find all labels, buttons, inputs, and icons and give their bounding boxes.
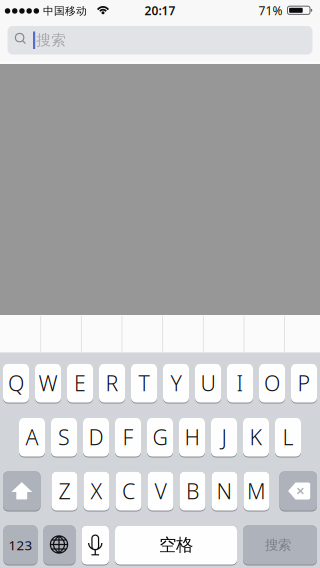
button[interactable]: 搜索 — [243, 525, 317, 565]
button[interactable]: Dictate — [81, 525, 109, 565]
staticText: H — [184, 423, 199, 451]
staticText: Z — [58, 477, 70, 505]
button[interactable]: M — [243, 471, 269, 511]
staticText: V — [154, 477, 166, 505]
button[interactable]: S — [51, 417, 77, 457]
button[interactable]: N — [211, 471, 237, 511]
button[interactable]: G — [147, 417, 173, 457]
button[interactable]: P — [291, 363, 317, 403]
staticText: D — [88, 423, 103, 451]
staticText: U — [200, 369, 215, 397]
button[interactable]: Y — [163, 363, 189, 403]
staticText: Q — [8, 369, 24, 397]
staticText: 71% — [258, 2, 282, 18]
staticText: B — [186, 477, 199, 505]
button[interactable]: D — [83, 417, 109, 457]
button[interactable]: 空格 — [115, 525, 237, 565]
staticText: A — [25, 423, 38, 451]
staticText: Y — [170, 369, 181, 397]
button[interactable]: A — [19, 417, 45, 457]
staticText: 空格 — [159, 534, 193, 556]
button[interactable]: U — [195, 363, 221, 403]
staticText: G — [152, 423, 167, 451]
staticText: R — [105, 369, 118, 397]
button[interactable]: K — [243, 417, 269, 457]
button[interactable]: C — [115, 471, 141, 511]
staticText: T — [138, 369, 149, 397]
button[interactable]: J — [211, 417, 237, 457]
staticText: F — [122, 423, 133, 451]
staticText: 123 — [8, 536, 32, 554]
staticText: I — [236, 369, 243, 397]
staticText: S — [58, 423, 70, 451]
button[interactable]: Z — [51, 471, 77, 511]
button[interactable]: I — [227, 363, 253, 403]
staticText: C — [122, 477, 135, 505]
staticText: M — [247, 477, 266, 505]
button[interactable]: V — [147, 471, 173, 511]
staticText: 中国移动 — [43, 4, 87, 17]
button[interactable]: W — [35, 363, 61, 403]
button[interactable]: B — [179, 471, 205, 511]
staticText: N — [216, 477, 232, 505]
button[interactable]: Shift — [3, 471, 40, 511]
button[interactable]: F — [115, 417, 141, 457]
staticText: K — [249, 423, 262, 451]
staticText: P — [297, 369, 310, 397]
button[interactable]: Next keyboard — [43, 525, 75, 565]
button[interactable]: 搜索 — [0, 0, 320, 60]
button[interactable]: Delete — [279, 471, 317, 511]
button[interactable]: T — [131, 363, 157, 403]
button[interactable]: Q — [3, 363, 29, 403]
staticText: W — [38, 369, 57, 397]
staticText: X — [90, 477, 102, 505]
staticText: 20:17 — [144, 2, 175, 18]
staticText: 搜索 — [265, 537, 291, 553]
button[interactable]: R — [99, 363, 125, 403]
staticText: L — [282, 423, 293, 451]
staticText: E — [74, 369, 86, 397]
button[interactable]: E — [67, 363, 93, 403]
button[interactable]: O — [259, 363, 285, 403]
button[interactable]: H — [179, 417, 205, 457]
button[interactable]: 123 — [3, 525, 37, 565]
button[interactable]: L — [275, 417, 301, 457]
staticText: O — [264, 369, 280, 397]
button[interactable]: X — [83, 471, 109, 511]
staticText: J — [221, 423, 226, 451]
staticText: 搜索 — [36, 31, 66, 49]
